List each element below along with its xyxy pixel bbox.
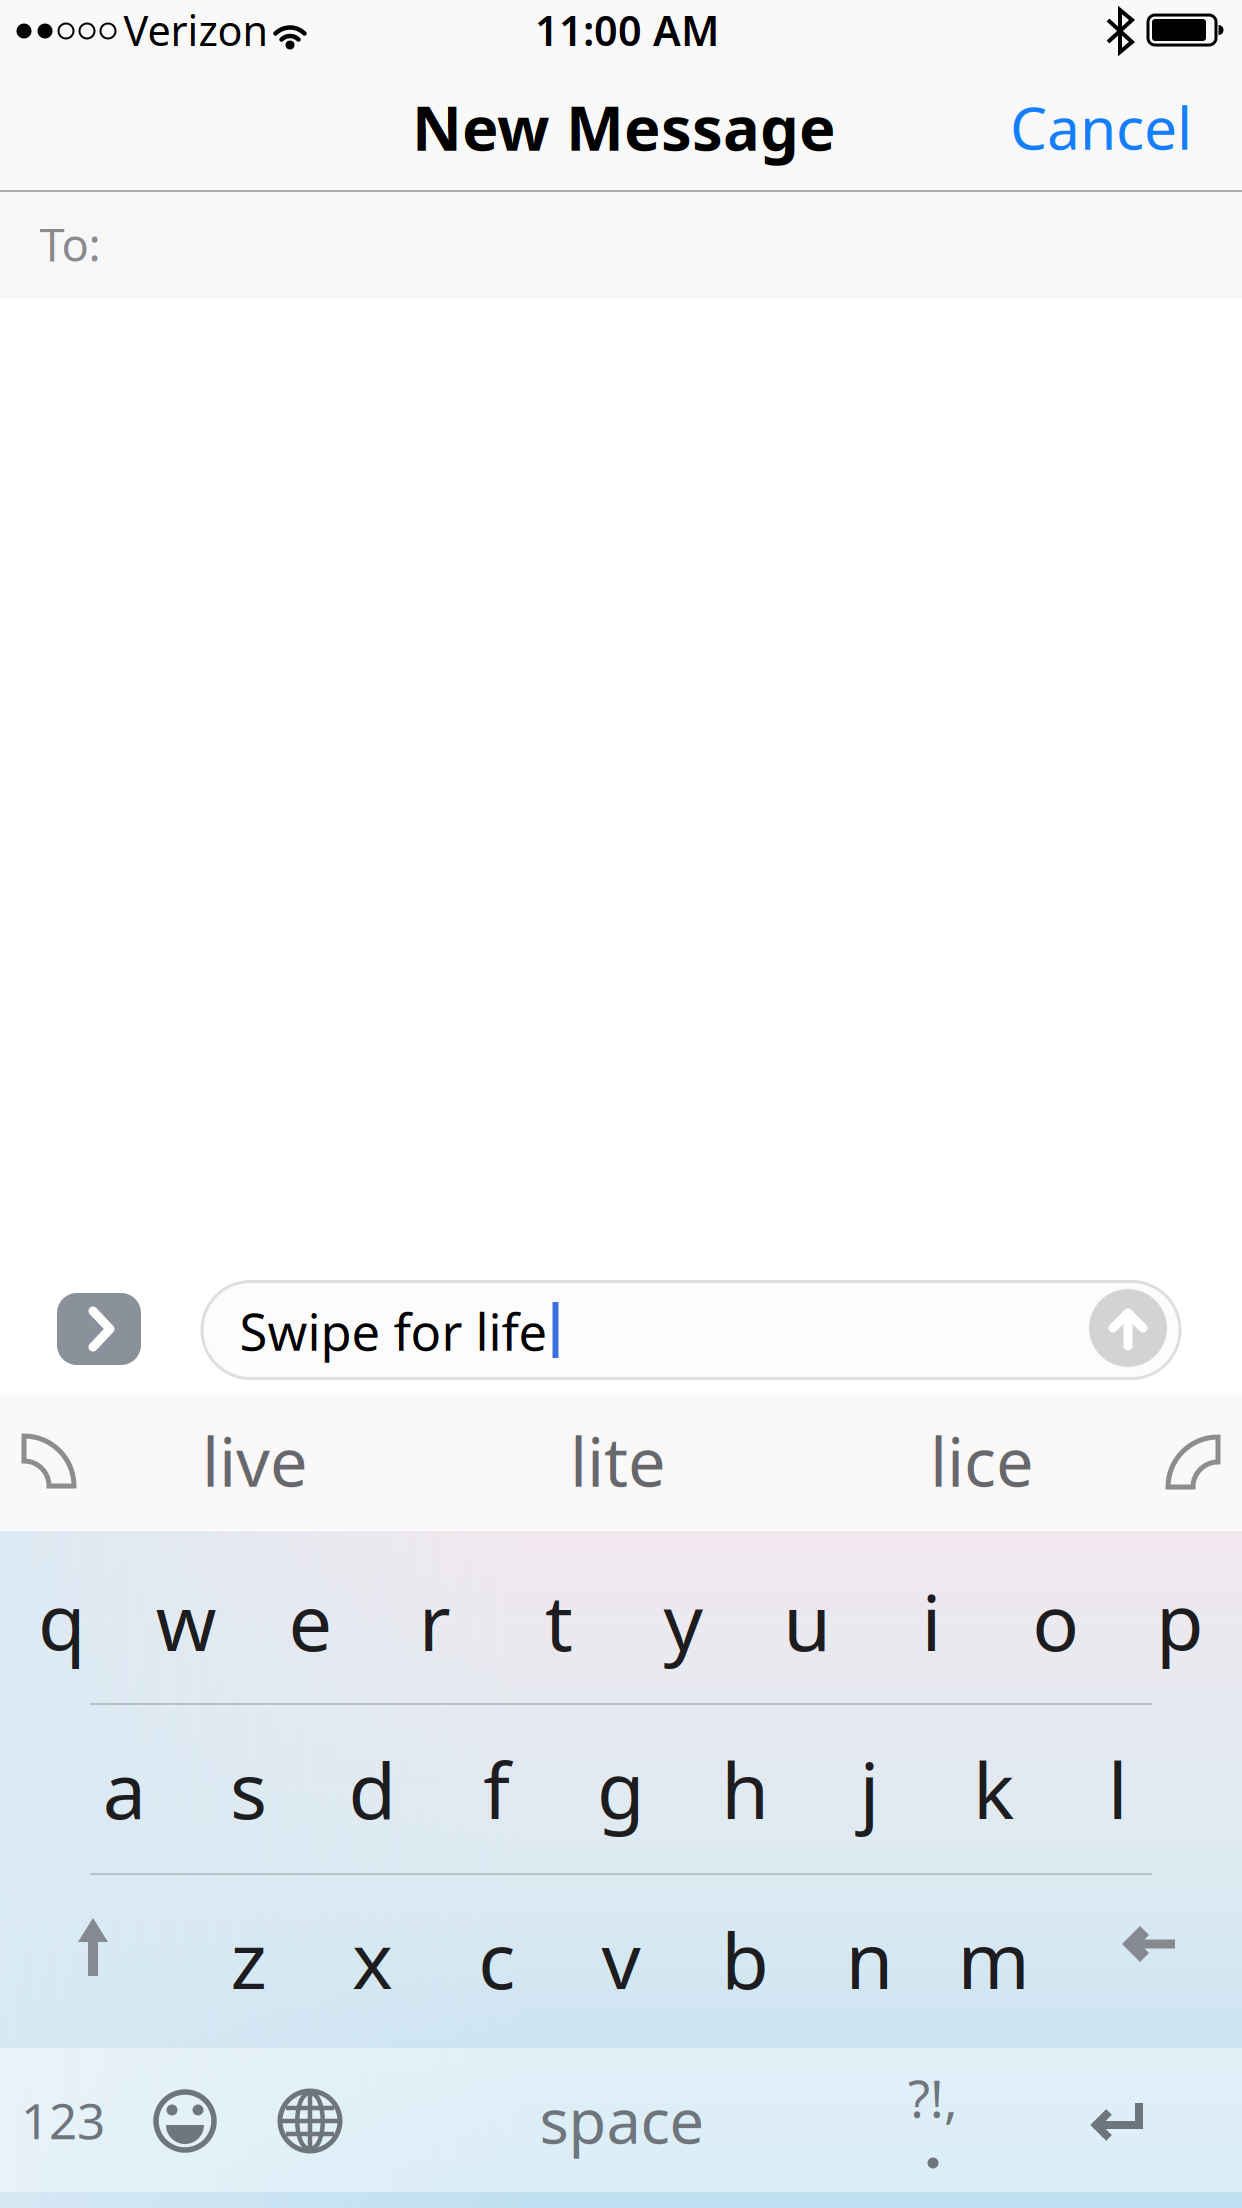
button[interactable]: y bbox=[628, 1556, 738, 1686]
staticText: x bbox=[352, 1908, 393, 2010]
staticText: l bbox=[1108, 1738, 1128, 1840]
button[interactable]: h bbox=[690, 1724, 800, 1854]
button[interactable]: e bbox=[255, 1556, 365, 1686]
staticText: lice bbox=[930, 1417, 1034, 1505]
button[interactable]: f bbox=[442, 1724, 552, 1854]
button[interactable]: r bbox=[380, 1556, 490, 1686]
button[interactable]: lice bbox=[930, 1417, 1034, 1505]
button[interactable]: p bbox=[1125, 1556, 1235, 1686]
staticText: i bbox=[921, 1570, 941, 1672]
button[interactable] bbox=[57, 1293, 141, 1365]
button[interactable]: m bbox=[939, 1894, 1049, 2024]
staticText: d bbox=[349, 1738, 397, 1840]
staticText: Verizon bbox=[123, 3, 268, 57]
staticText: Swipe for life bbox=[239, 1297, 547, 1365]
button[interactable]: k bbox=[939, 1724, 1049, 1854]
button[interactable] bbox=[153, 2089, 217, 2153]
staticText: a bbox=[103, 1738, 146, 1840]
staticText: 123 bbox=[21, 2087, 105, 2153]
button[interactable]: ?!, bbox=[898, 2070, 968, 2186]
staticText: u bbox=[783, 1570, 831, 1672]
staticText: Cancel bbox=[1010, 88, 1192, 166]
staticText: m bbox=[958, 1908, 1030, 2010]
staticText: space bbox=[539, 2079, 704, 2161]
button[interactable] bbox=[1165, 1433, 1221, 1489]
staticText: New Message bbox=[412, 86, 836, 168]
button[interactable]: z bbox=[193, 1894, 303, 2024]
staticText: b bbox=[721, 1908, 769, 2010]
button[interactable]: a bbox=[69, 1724, 179, 1854]
button[interactable]: b bbox=[690, 1894, 800, 2024]
button[interactable]: g bbox=[566, 1724, 676, 1854]
staticText: t bbox=[545, 1570, 573, 1672]
button[interactable] bbox=[0, 191, 1242, 299]
staticText: z bbox=[230, 1908, 266, 2010]
staticText: c bbox=[478, 1908, 515, 2010]
button[interactable]: v bbox=[566, 1894, 676, 2024]
staticText: o bbox=[1032, 1570, 1079, 1672]
button[interactable] bbox=[21, 1433, 77, 1489]
button[interactable]: i bbox=[876, 1556, 986, 1686]
staticText: h bbox=[721, 1738, 769, 1840]
staticText: To: bbox=[39, 214, 100, 274]
staticText: s bbox=[230, 1738, 267, 1840]
staticText: v bbox=[601, 1908, 640, 2010]
button[interactable]: j bbox=[814, 1724, 924, 1854]
button[interactable]: o bbox=[1001, 1556, 1111, 1686]
button[interactable] bbox=[1120, 1924, 1178, 1964]
staticText: f bbox=[483, 1738, 510, 1840]
staticText: e bbox=[288, 1570, 332, 1672]
button[interactable]: Cancel bbox=[1010, 88, 1192, 166]
button[interactable]: lite bbox=[570, 1417, 666, 1505]
button[interactable] bbox=[1089, 1289, 1167, 1367]
button[interactable] bbox=[61, 1915, 125, 1979]
staticText: y bbox=[664, 1570, 703, 1672]
staticText: k bbox=[973, 1738, 1014, 1840]
staticText: 11:00 AM bbox=[535, 3, 719, 57]
staticText: n bbox=[845, 1908, 893, 2010]
staticText: w bbox=[156, 1570, 217, 1672]
button[interactable]: Swipe for life bbox=[200, 1280, 1181, 1380]
button[interactable]: t bbox=[504, 1556, 614, 1686]
staticText: lite bbox=[570, 1417, 666, 1505]
button[interactable]: q bbox=[7, 1556, 117, 1686]
button[interactable]: live bbox=[202, 1417, 308, 1505]
button[interactable]: n bbox=[814, 1894, 924, 2024]
staticText: j bbox=[859, 1738, 879, 1840]
button[interactable]: x bbox=[318, 1894, 428, 2024]
button[interactable]: c bbox=[442, 1894, 552, 2024]
staticText: p bbox=[1156, 1570, 1204, 1672]
button[interactable]: s bbox=[193, 1724, 303, 1854]
button[interactable] bbox=[1085, 2097, 1149, 2145]
button[interactable]: space bbox=[422, 2060, 822, 2180]
button[interactable]: u bbox=[752, 1556, 862, 1686]
button[interactable]: w bbox=[131, 1556, 241, 1686]
staticText: q bbox=[38, 1570, 86, 1672]
button[interactable]: d bbox=[318, 1724, 428, 1854]
button[interactable] bbox=[278, 2089, 342, 2153]
button[interactable]: l bbox=[1063, 1724, 1173, 1854]
staticText: g bbox=[597, 1738, 645, 1840]
staticText: live bbox=[202, 1417, 308, 1505]
staticText: ?!, bbox=[908, 2064, 958, 2132]
button[interactable]: 123 bbox=[13, 2060, 113, 2180]
staticText: r bbox=[419, 1570, 451, 1672]
